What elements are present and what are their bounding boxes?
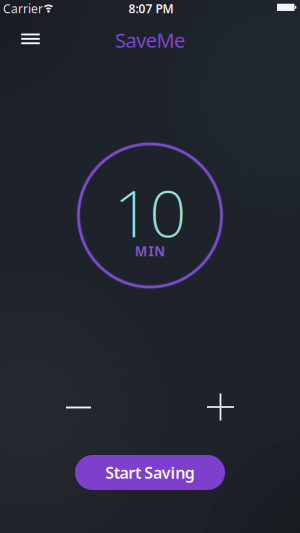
staticText: N — [154, 242, 165, 260]
button[interactable]: Decrease minutes — [54, 394, 103, 420]
staticText: Carrier — [3, 0, 43, 16]
staticText: M — [135, 242, 148, 260]
staticText: I — [148, 242, 153, 260]
staticText: 8:07 PM — [128, 0, 173, 16]
button[interactable]: Menu — [13, 25, 48, 52]
button[interactable]: Start Saving — [75, 455, 225, 490]
staticText: SaveMe — [115, 27, 185, 53]
staticText: 10 — [114, 169, 186, 255]
button[interactable]: Increase minutes — [201, 387, 240, 426]
staticText: Start Saving — [105, 462, 195, 483]
